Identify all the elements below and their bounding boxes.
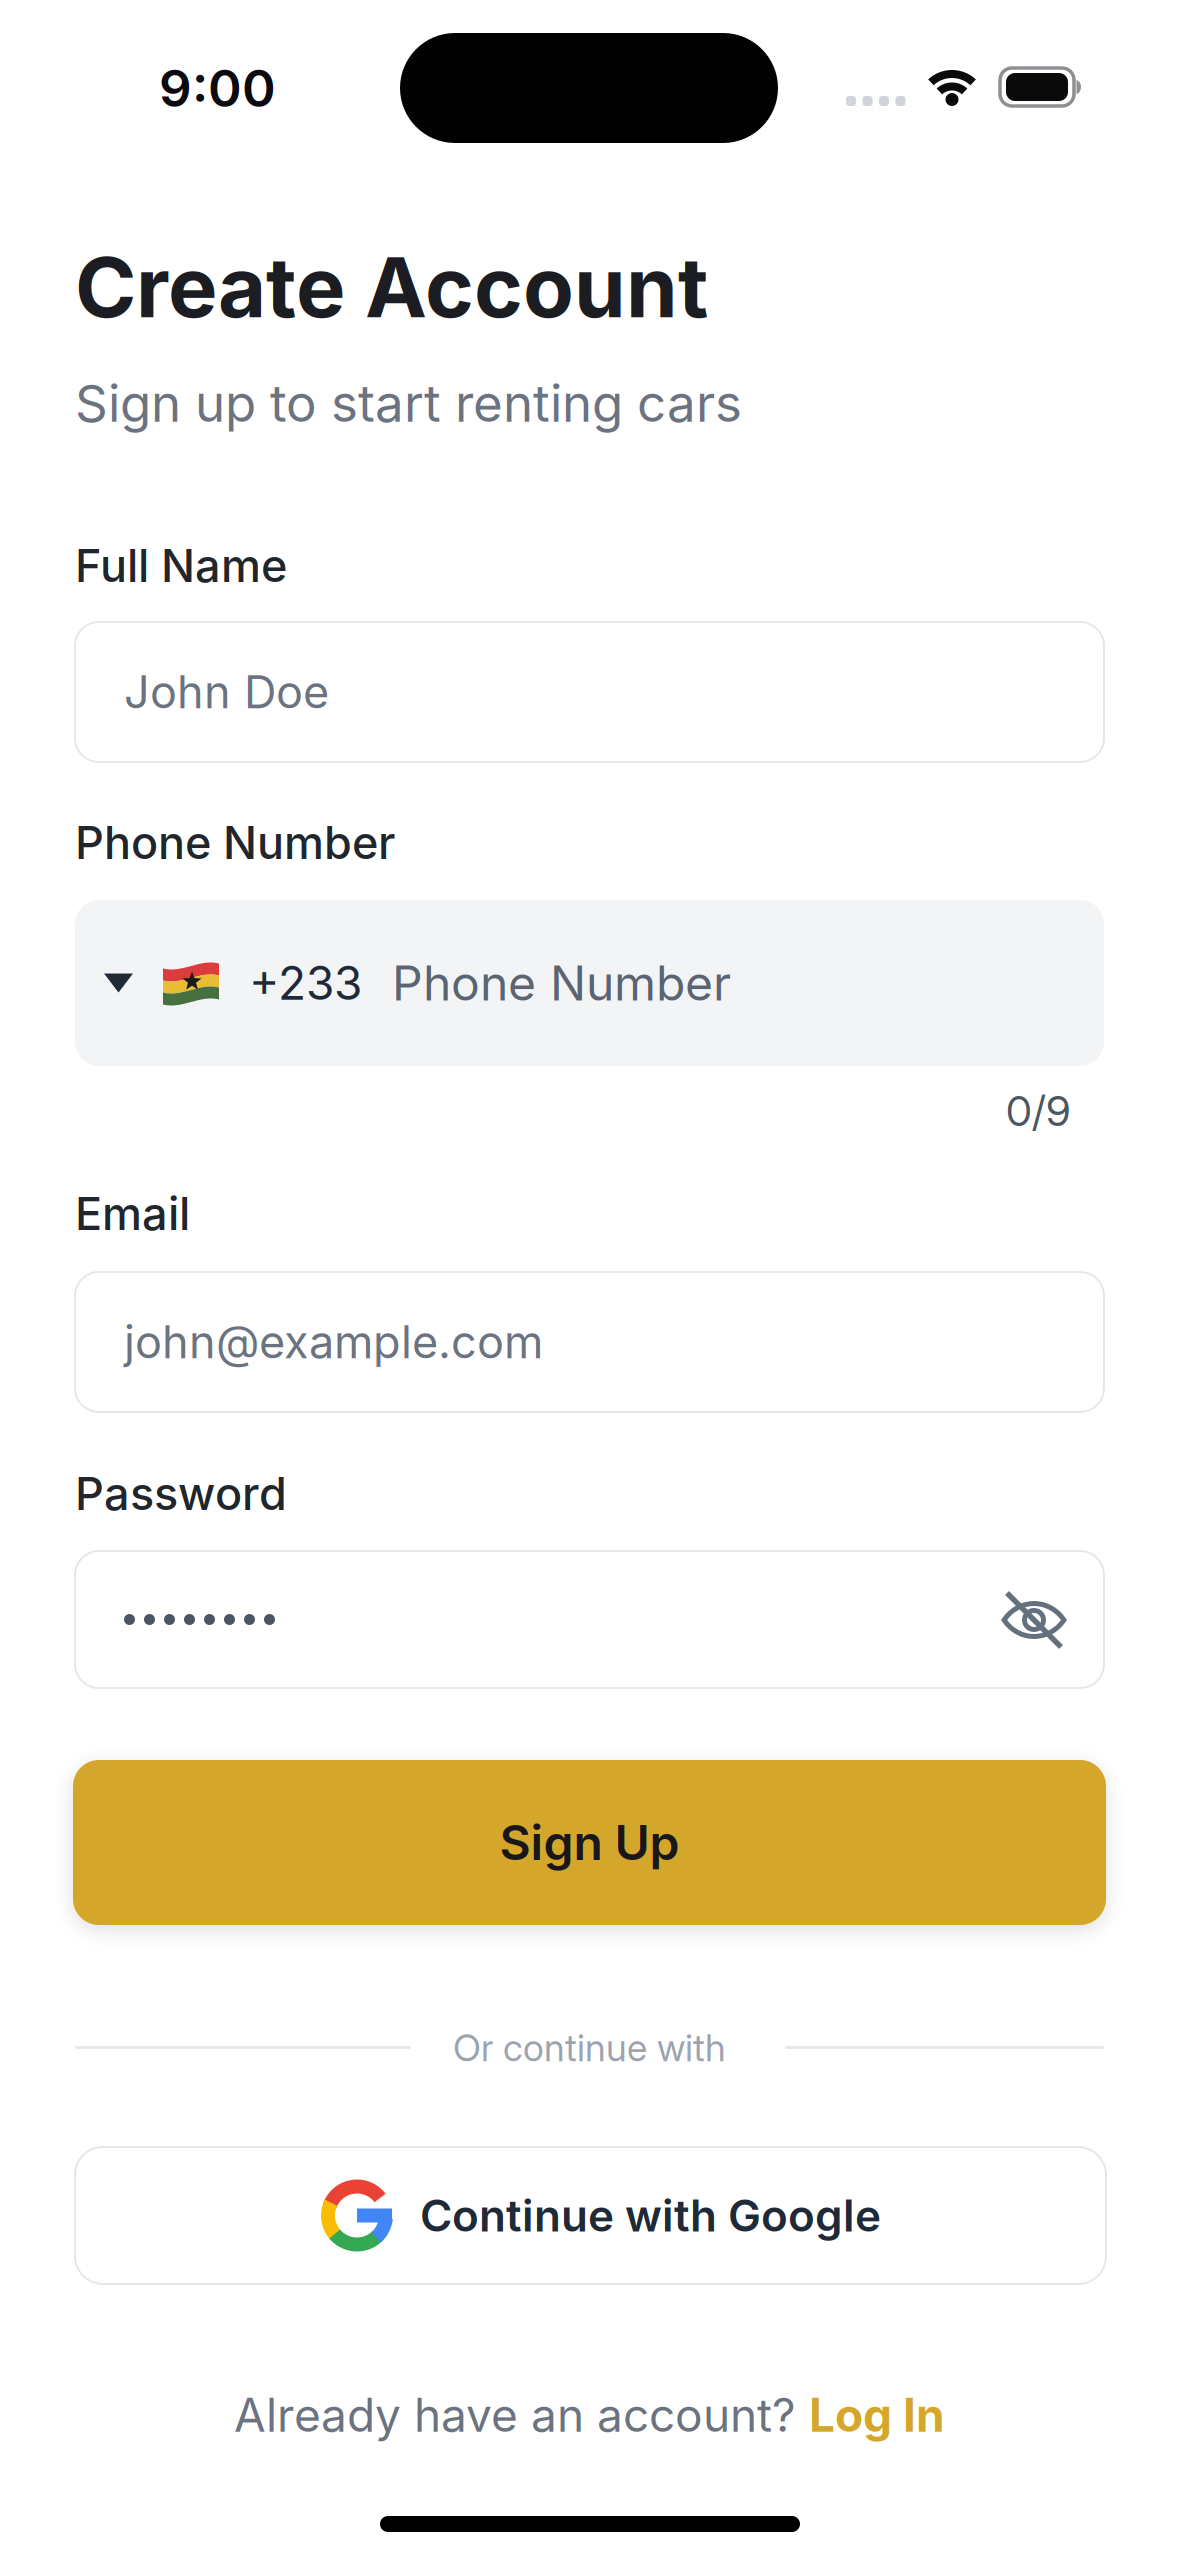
staticText: Log In — [809, 2388, 945, 2442]
staticText: 0/9 — [1006, 1086, 1071, 1135]
staticText: Phone Number — [392, 955, 731, 1011]
button[interactable]: Email — [75, 1272, 1104, 1412]
button[interactable]: Show password — [1001, 1591, 1067, 1649]
staticText: Create Account — [75, 238, 708, 336]
button[interactable]: Password — [75, 1551, 1104, 1688]
staticText: Email — [75, 1187, 190, 1240]
button[interactable]: Select country code — [104, 956, 362, 1010]
button[interactable]: Sign Up — [73, 1760, 1106, 1925]
button[interactable]: Log In — [809, 2388, 945, 2442]
staticText: Full Name — [75, 539, 287, 592]
staticText: Phone Number — [75, 816, 395, 869]
staticText: Sign Up — [499, 1814, 679, 1871]
staticText: Password — [75, 1467, 287, 1520]
staticText: John Doe — [124, 665, 329, 719]
staticText: Already have an account? — [234, 2388, 796, 2442]
button[interactable]: Phone Number — [75, 900, 1104, 1066]
staticText: Continue with Google — [420, 2189, 881, 2241]
staticText: Or continue with — [453, 2026, 726, 2070]
staticText: +233 — [249, 956, 362, 1010]
button[interactable]: Continue with Google — [75, 2147, 1106, 2284]
staticText: john@example.com — [124, 1315, 543, 1369]
button[interactable]: Full Name — [75, 622, 1104, 762]
staticText: 9:00 — [159, 58, 276, 118]
staticText: Sign up to start renting cars — [75, 373, 742, 433]
